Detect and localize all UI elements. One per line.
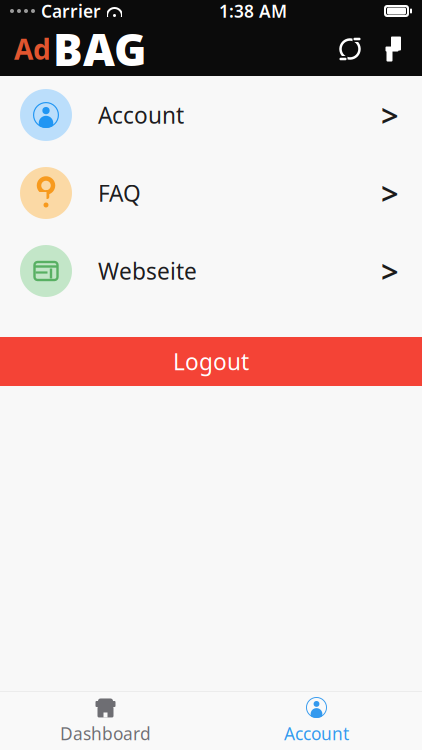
staticText: Dashboard <box>60 722 151 745</box>
button[interactable]: Flash <box>372 27 414 71</box>
staticText: Account <box>284 722 349 745</box>
staticText: 1:38 AM <box>219 0 287 22</box>
button[interactable]: Webseite <box>0 232 422 310</box>
staticText: > <box>381 251 399 291</box>
staticText: > <box>381 173 399 213</box>
staticText: BAG <box>53 20 147 78</box>
button[interactable]: Logout <box>0 337 422 386</box>
staticText: Webseite <box>98 256 197 286</box>
staticText: Carrier <box>41 0 101 22</box>
button[interactable]: FAQ <box>0 154 422 232</box>
staticText: Ad <box>14 30 51 68</box>
button[interactable]: Refresh <box>328 27 372 71</box>
staticText: Logout <box>173 346 249 376</box>
staticText: FAQ <box>98 178 141 208</box>
button[interactable]: Account <box>211 692 422 750</box>
staticText: Account <box>98 100 184 130</box>
button[interactable]: Account <box>0 76 422 154</box>
button[interactable]: Dashboard <box>0 692 211 750</box>
staticText: > <box>381 95 399 135</box>
